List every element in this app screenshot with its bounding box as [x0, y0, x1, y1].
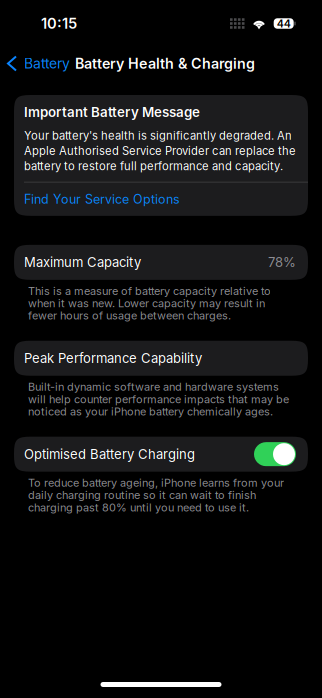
button[interactable]: Battery	[0, 47, 75, 80]
staticText: Important Battery Message	[24, 104, 200, 120]
staticText: This is a measure of battery capacity re…	[28, 285, 271, 322]
staticText: 44	[277, 17, 291, 30]
staticText: Maximum Capacity	[24, 254, 141, 270]
staticText: 78%	[268, 254, 296, 270]
staticText: To reduce battery ageing, iPhone learns …	[28, 477, 284, 514]
staticText: Battery	[24, 55, 70, 72]
staticText: Built-in dynamic software and hardware s…	[28, 381, 289, 418]
button[interactable]: Optimised Battery Charging	[254, 442, 296, 466]
staticText: Your battery's health is significantly d…	[24, 128, 296, 174]
staticText: 10:15	[41, 15, 77, 32]
staticText: Peak Performance Capability	[24, 350, 202, 366]
staticText: Find Your Service Options	[24, 192, 180, 207]
button[interactable]: Find Your Service Options	[24, 192, 298, 207]
staticText: Optimised Battery Charging	[24, 446, 195, 462]
staticText: Battery Health & Charging	[75, 55, 255, 72]
